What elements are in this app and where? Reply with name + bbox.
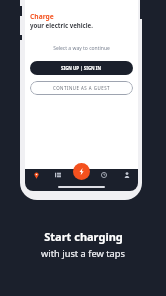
- staticText: with just a few taps: [41, 247, 125, 260]
- staticText: Start charging: [44, 229, 123, 244]
- staticText: Charge: [30, 12, 54, 21]
- staticText: CONTINUE AS A GUEST: [53, 85, 111, 91]
- staticText: SIGN UP | SIGN IN: [61, 65, 102, 71]
- staticText: your electric vehicle.: [30, 21, 93, 29]
- button[interactable]: Profile: [115, 168, 138, 182]
- button[interactable]: History: [92, 168, 115, 182]
- staticText: Select a way to continue: [25, 45, 138, 52]
- button[interactable]: SIGN UP | SIGN IN: [30, 61, 133, 75]
- button[interactable]: Stations: [47, 168, 69, 182]
- button[interactable]: [69, 168, 92, 182]
- button[interactable]: Start charging: [73, 163, 90, 180]
- button[interactable]: CONTINUE AS A GUEST: [30, 81, 133, 95]
- button[interactable]: Map: [25, 168, 47, 182]
